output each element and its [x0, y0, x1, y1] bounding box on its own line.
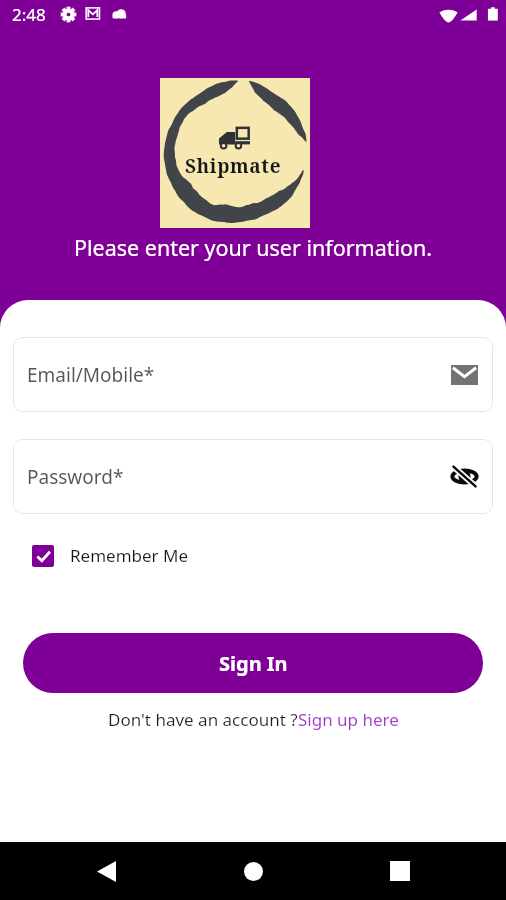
button[interactable]: Sign up here: [298, 708, 399, 731]
button[interactable]: Sign In: [23, 633, 483, 693]
button[interactable]: Remember Me: [28, 538, 193, 573]
staticText: Please enter your user information.: [74, 233, 433, 262]
staticText: 2:48: [12, 3, 46, 26]
staticText: Email/Mobile*: [27, 362, 155, 388]
button[interactable]: Recent apps: [372, 843, 428, 899]
button[interactable]: Back: [78, 843, 134, 899]
button[interactable]: Show password: [451, 465, 478, 488]
button[interactable]: Home: [225, 843, 281, 899]
staticText: Shipmate: [185, 153, 282, 179]
other: Email: [451, 365, 478, 385]
staticText: Sign up here: [298, 708, 399, 731]
staticText: Password*: [27, 464, 124, 490]
staticText: Sign In: [219, 650, 288, 677]
button[interactable]: Email/Mobile*: [13, 337, 493, 412]
staticText: Don't have an account ?: [108, 708, 298, 731]
staticText: Remember Me: [70, 544, 189, 567]
button[interactable]: Password*: [13, 439, 493, 514]
